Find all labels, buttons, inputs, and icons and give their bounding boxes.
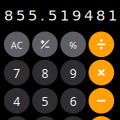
button[interactable]: 8 [32, 60, 58, 85]
button[interactable]: AC [4, 31, 30, 57]
button[interactable]: Subtract [88, 88, 114, 114]
button[interactable]: 1 [4, 116, 30, 120]
button[interactable]: 2 [32, 116, 58, 120]
button[interactable]: Divide [88, 31, 114, 57]
button[interactable]: Add [88, 116, 114, 120]
staticText: 6 [70, 93, 77, 109]
staticText: 4 [13, 93, 20, 109]
button[interactable]: 9 [60, 60, 86, 85]
button[interactable]: 3 [60, 116, 86, 120]
staticText: AC [11, 39, 23, 51]
button[interactable]: 7 [4, 60, 30, 85]
staticText: 855.519481 [4, 7, 117, 24]
button[interactable]: 5 [32, 88, 58, 114]
staticText: % [69, 39, 77, 51]
staticText: 7 [13, 65, 20, 81]
button[interactable]: % [60, 31, 86, 57]
staticText: 9 [70, 65, 77, 81]
button[interactable]: Plus minus [32, 31, 58, 57]
button[interactable]: 4 [4, 88, 30, 114]
staticText: 8 [41, 65, 48, 81]
staticText: 5 [41, 93, 48, 109]
button[interactable]: 6 [60, 88, 86, 114]
button[interactable]: Multiply [88, 60, 114, 85]
